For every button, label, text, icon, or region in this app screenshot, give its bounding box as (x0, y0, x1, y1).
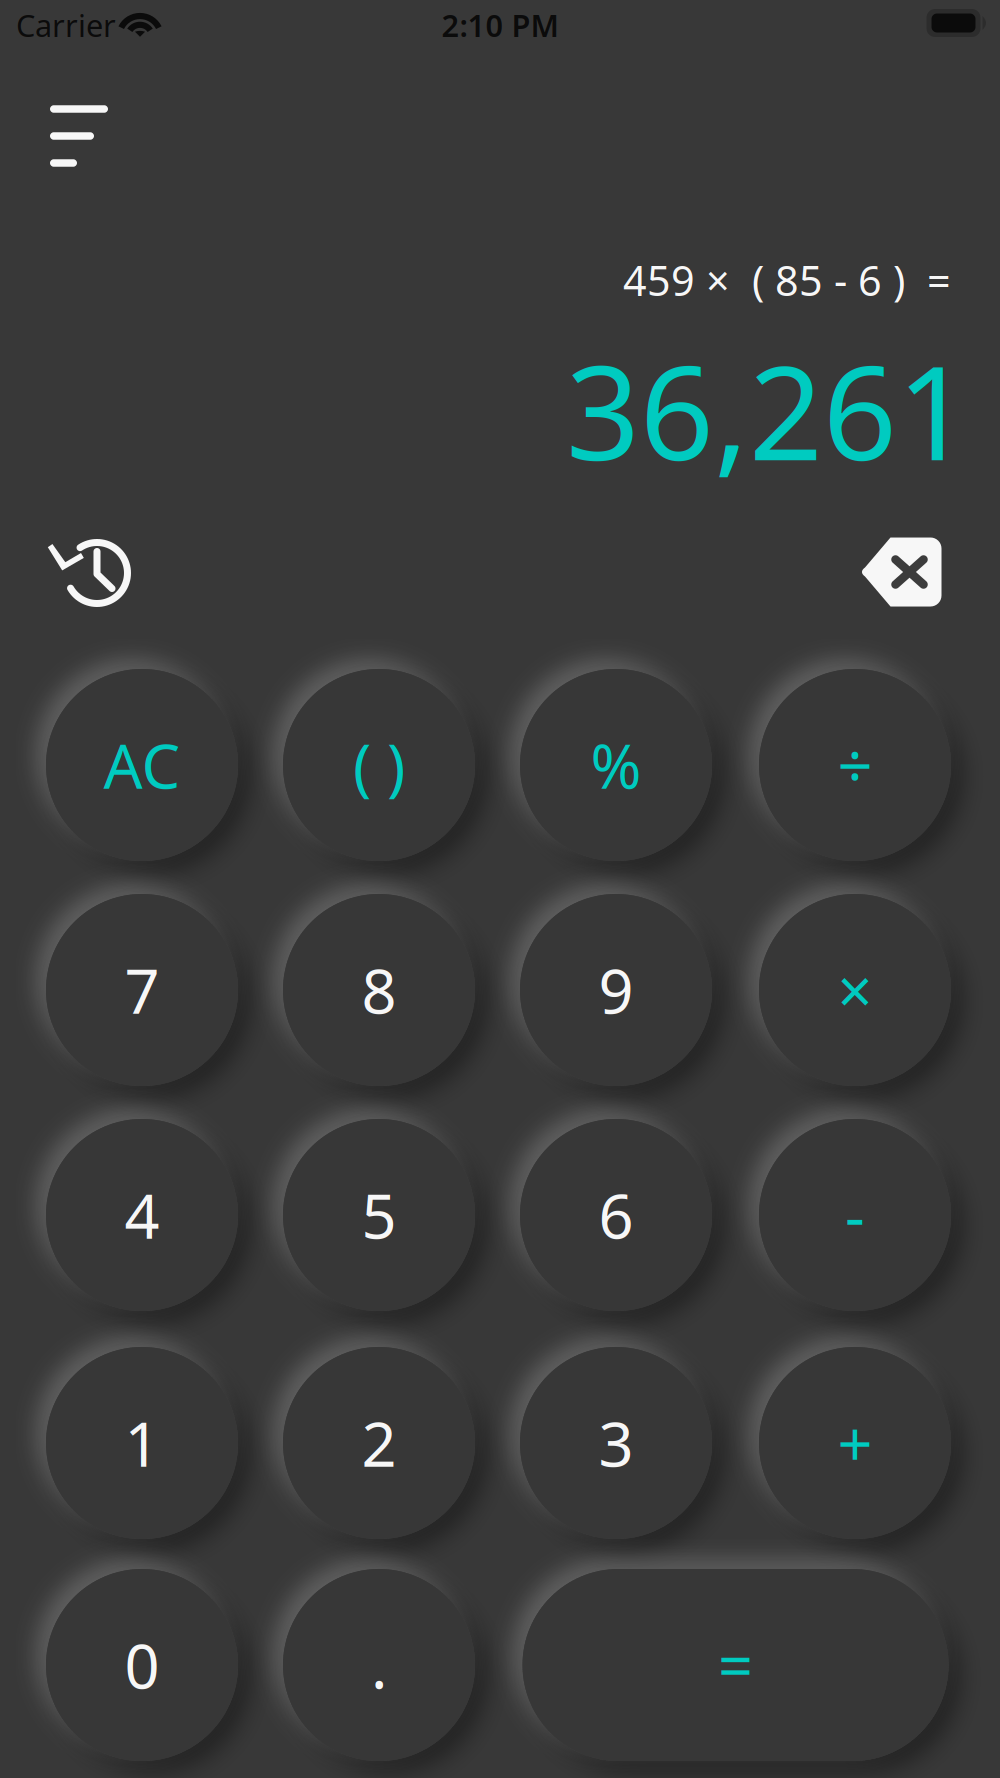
button[interactable]: 4 (46, 1119, 238, 1311)
button[interactable]: Delete (836, 512, 966, 632)
staticText: 2 (361, 1402, 396, 1484)
staticText: . (371, 1624, 387, 1706)
staticText: 36,261 (566, 324, 971, 496)
button[interactable]: 6 (520, 1119, 712, 1311)
button[interactable]: - (759, 1119, 951, 1311)
staticText: Carrier (16, 5, 116, 45)
button[interactable]: + (759, 1347, 951, 1539)
button[interactable]: 1 (46, 1347, 238, 1539)
staticText: ( ) (353, 724, 405, 806)
staticText: 5 (361, 1174, 396, 1256)
button[interactable]: AC (46, 669, 238, 861)
button[interactable]: 3 (520, 1347, 712, 1539)
staticText: 4 (124, 1174, 159, 1256)
staticText: ÷ (837, 724, 872, 806)
button[interactable]: ( ) (283, 669, 475, 861)
staticText: 6 (598, 1174, 633, 1256)
staticText: 8 (361, 949, 396, 1031)
staticText: 3 (598, 1402, 633, 1484)
staticText: 459 × ( 85 - 6 ) = (623, 253, 951, 307)
staticText: = (718, 1624, 753, 1706)
button[interactable]: Menu (14, 71, 144, 201)
staticText: 9 (598, 949, 633, 1031)
button[interactable]: 0 (46, 1569, 238, 1761)
button[interactable]: % (520, 669, 712, 861)
staticText: 0 (124, 1624, 159, 1706)
button[interactable]: 9 (520, 894, 712, 1086)
button[interactable]: 2 (283, 1347, 475, 1539)
staticText: % (590, 724, 641, 806)
button[interactable]: × (759, 894, 951, 1086)
button[interactable]: 8 (283, 894, 475, 1086)
staticText: AC (103, 724, 180, 806)
staticText: × (837, 949, 872, 1031)
staticText: 1 (124, 1402, 159, 1484)
button[interactable]: 7 (46, 894, 238, 1086)
staticText: 2:10 PM (441, 5, 558, 45)
button[interactable]: . (283, 1569, 475, 1761)
staticText: 7 (124, 949, 159, 1031)
button[interactable]: History (26, 510, 156, 630)
button[interactable]: 5 (283, 1119, 475, 1311)
staticText: + (837, 1402, 872, 1484)
button[interactable]: ÷ (759, 669, 951, 861)
staticText: - (845, 1174, 865, 1256)
button[interactable]: = (522, 1569, 948, 1761)
